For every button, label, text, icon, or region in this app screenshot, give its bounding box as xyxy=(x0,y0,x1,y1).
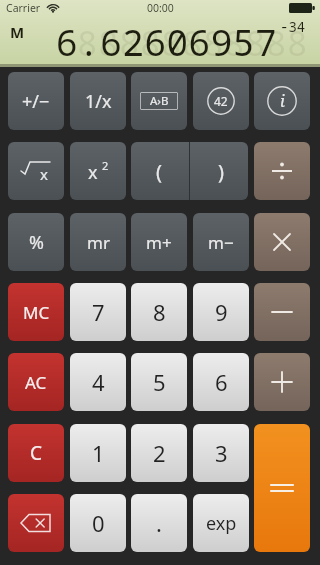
staticText: i xyxy=(280,90,285,112)
button[interactable]: Plus xyxy=(254,353,310,411)
button[interactable]: MC xyxy=(8,283,64,341)
staticText: m+ xyxy=(146,231,172,254)
button[interactable]: 1/x xyxy=(70,72,126,130)
button[interactable]: 6 xyxy=(193,353,249,411)
button[interactable]: 3 xyxy=(193,424,249,482)
staticText: ( xyxy=(156,158,162,185)
button[interactable]: 7 xyxy=(70,283,126,341)
staticText: 6 xyxy=(215,367,228,397)
button[interactable]: 4 xyxy=(70,353,126,411)
staticText: 3 xyxy=(215,438,228,468)
button[interactable]: Equals xyxy=(254,424,310,552)
staticText: exp xyxy=(206,511,237,536)
staticText: 6.62606957 xyxy=(56,18,278,62)
staticText: -34 xyxy=(280,17,306,35)
staticText: Carrier xyxy=(6,1,41,15)
button[interactable]: 9 xyxy=(193,283,249,341)
button[interactable]: mr xyxy=(70,213,126,271)
staticText: 1 xyxy=(92,438,105,468)
button[interactable]: +/− xyxy=(8,72,64,130)
button[interactable]: 1 xyxy=(70,424,126,482)
staticText: 2 xyxy=(102,158,109,173)
staticText: 88888888888 xyxy=(77,20,308,60)
button[interactable]: Divide xyxy=(254,142,310,200)
button[interactable]: m+ xyxy=(131,213,187,271)
button[interactable]: Multiply xyxy=(254,213,310,271)
button[interactable]: AC xyxy=(8,353,64,411)
staticText: 4 xyxy=(92,367,105,397)
staticText: % xyxy=(29,230,44,255)
button[interactable]: % xyxy=(8,213,64,271)
staticText: 42 xyxy=(214,93,228,109)
staticText: 5 xyxy=(153,367,166,397)
staticText: C xyxy=(30,440,43,466)
staticText: 2 xyxy=(153,438,166,468)
staticText: 0 xyxy=(92,508,105,538)
button[interactable]: Info xyxy=(254,72,310,130)
button[interactable]: 0 xyxy=(70,494,126,552)
button[interactable]: Constants xyxy=(193,72,249,130)
staticText: M xyxy=(10,22,25,42)
button[interactable]: x squared xyxy=(70,142,126,200)
button[interactable]: exp xyxy=(193,494,249,552)
button[interactable]: 2 xyxy=(131,424,187,482)
staticText: mr xyxy=(87,231,110,254)
staticText: m− xyxy=(208,231,234,254)
staticText: ) xyxy=(218,158,224,185)
staticText: 00:00 xyxy=(147,1,174,15)
staticText: A›B xyxy=(150,93,169,109)
button[interactable]: 8 xyxy=(131,283,187,341)
button[interactable]: Square root xyxy=(8,142,64,200)
staticText: AC xyxy=(25,371,47,394)
button[interactable]: Decimal point xyxy=(131,494,187,552)
staticText: 7 xyxy=(92,297,105,327)
staticText: +/− xyxy=(22,89,50,114)
button[interactable]: ( xyxy=(131,142,187,200)
button[interactable]: ) xyxy=(193,142,248,200)
staticText: x xyxy=(88,160,98,185)
button[interactable]: m− xyxy=(193,213,249,271)
button[interactable]: Backspace xyxy=(8,494,64,552)
button[interactable]: A to B conversion xyxy=(131,72,187,130)
button[interactable]: C xyxy=(8,424,64,482)
staticText: x xyxy=(40,164,48,184)
staticText: 9 xyxy=(215,297,228,327)
button[interactable]: Minus xyxy=(254,283,310,341)
button[interactable]: 5 xyxy=(131,353,187,411)
staticText: MC xyxy=(23,301,50,324)
staticText: 8 xyxy=(153,297,166,327)
staticText: . xyxy=(156,508,162,538)
staticText: 1/x xyxy=(85,89,112,114)
